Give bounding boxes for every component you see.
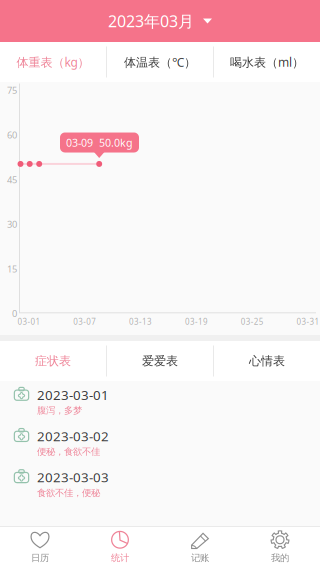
staticText: 腹泻，多梦: [37, 405, 82, 416]
staticText: 2023-03-01: [37, 386, 109, 404]
staticText: 体温表（℃）: [124, 54, 196, 70]
staticText: 记账: [191, 552, 209, 564]
button[interactable]: 爱爱表: [107, 341, 213, 381]
button[interactable]: 2023-03-01: [0, 381, 320, 422]
staticText: 食欲不佳，便秘: [37, 487, 100, 498]
staticText: 03-25: [241, 316, 264, 327]
staticText: 03-31: [296, 316, 319, 327]
staticText: 75: [7, 84, 17, 96]
staticText: 03-09 50.0kg: [66, 135, 133, 150]
staticText: 心情表: [249, 354, 285, 368]
button[interactable]: 日历: [0, 526, 80, 568]
staticText: 症状表: [35, 354, 71, 368]
staticText: 0: [12, 307, 17, 320]
button[interactable]: 2023-03-02: [0, 422, 320, 463]
staticText: 2023-03-02: [37, 427, 109, 445]
staticText: 03-13: [129, 316, 152, 327]
staticText: 03-19: [185, 316, 208, 327]
button[interactable]: 体温表（℃）: [107, 42, 213, 82]
button[interactable]: 心情表: [214, 341, 320, 381]
button[interactable]: 2023年03月: [96, 2, 224, 40]
staticText: 我的: [271, 552, 289, 564]
staticText: 日历: [31, 552, 49, 564]
button[interactable]: 2023-03-03: [0, 463, 320, 504]
button[interactable]: 体重表（kg）: [0, 42, 106, 82]
button[interactable]: 记账: [160, 526, 240, 568]
button[interactable]: 喝水表（ml）: [214, 42, 320, 82]
staticText: 03-07: [73, 316, 96, 327]
staticText: 体重表（kg）: [16, 54, 89, 70]
staticText: 爱爱表: [142, 354, 178, 368]
staticText: 03-01: [17, 316, 40, 327]
button[interactable]: 统计: [80, 526, 160, 568]
staticText: 统计: [111, 552, 129, 564]
button[interactable]: 症状表: [0, 341, 106, 381]
staticText: 45: [7, 173, 17, 186]
staticText: 60: [7, 129, 17, 141]
button[interactable]: 我的: [240, 526, 320, 568]
staticText: 2023年03月: [108, 10, 194, 32]
staticText: 15: [7, 263, 17, 275]
staticText: 便秘，食欲不佳: [37, 446, 100, 457]
staticText: 喝水表（ml）: [230, 54, 304, 70]
staticText: 30: [7, 218, 17, 230]
staticText: 2023-03-03: [37, 468, 109, 486]
